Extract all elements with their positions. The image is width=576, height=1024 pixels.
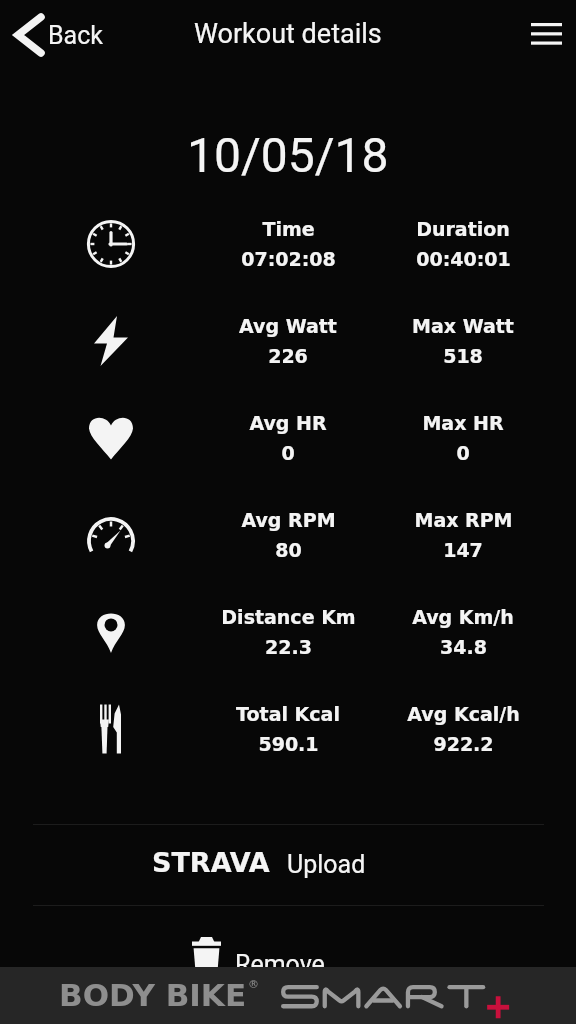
staticText: 0 <box>281 442 295 464</box>
staticText: Time <box>262 218 315 240</box>
staticText: Avg RPM <box>241 509 336 531</box>
staticText: 590.1 <box>258 733 319 755</box>
staticText: 922.2 <box>433 733 494 755</box>
button[interactable]: Remove <box>0 906 576 986</box>
staticText: Workout details <box>194 18 382 50</box>
staticText: Upload <box>287 850 366 879</box>
staticText: Back <box>48 21 103 50</box>
staticText: STRAVA <box>152 847 270 878</box>
staticText: Max RPM <box>414 509 513 531</box>
staticText: Avg HR <box>249 412 327 434</box>
staticText: 22.3 <box>265 636 312 658</box>
staticText: Avg Watt <box>239 315 337 337</box>
staticText: 226 <box>268 345 308 367</box>
staticText: Duration <box>416 218 510 240</box>
staticText: 80 <box>275 539 302 561</box>
staticText: 0 <box>456 442 470 464</box>
staticText: Avg Kcal/h <box>407 703 520 725</box>
staticText: 147 <box>443 539 483 561</box>
button[interactable]: STRAVA <box>0 825 576 905</box>
staticText: BODY BIKE <box>59 977 247 1013</box>
button[interactable]: Back <box>0 2 117 68</box>
staticText: 34.8 <box>440 636 487 658</box>
staticText: Avg Km/h <box>412 606 514 628</box>
staticText: ® <box>248 978 259 991</box>
button[interactable]: Menu <box>516 8 576 58</box>
staticText: Distance Km <box>221 606 356 628</box>
staticText: 00:40:01 <box>416 248 511 270</box>
staticText: Total Kcal <box>236 703 340 725</box>
staticText: 518 <box>443 345 483 367</box>
staticText: Max Watt <box>412 315 514 337</box>
staticText: Max HR <box>422 412 504 434</box>
staticText: Remove <box>235 950 325 979</box>
staticText: 07:02:08 <box>241 248 336 270</box>
staticText: 10/05/18 <box>187 127 389 183</box>
